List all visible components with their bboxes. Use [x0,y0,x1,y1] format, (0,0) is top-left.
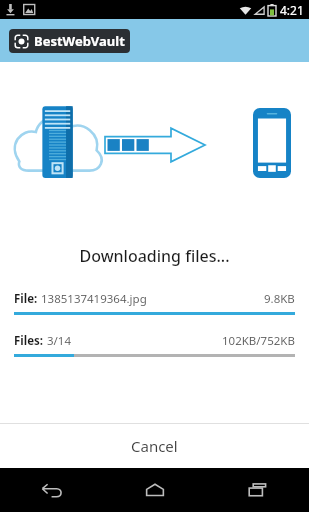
staticText: 4:21 [280,2,304,18]
staticText: 1385137419364.jpg [41,291,147,307]
staticText: 3/14 [47,333,72,349]
button[interactable]: Home [103,468,206,512]
staticText: File: [14,291,41,307]
button[interactable]: Back [0,468,103,512]
staticText: BestWebVault [34,32,125,50]
staticText: 9.8KB [264,291,295,307]
button[interactable]: Cancel [0,424,309,468]
button[interactable]: Recent apps [206,468,309,512]
staticText: Files: [14,333,47,349]
staticText: Cancel [131,436,178,456]
staticText: 102KB/752KB [222,333,295,349]
button[interactable]: BestWebVault [9,29,130,53]
staticText: Downloading files... [0,245,309,267]
